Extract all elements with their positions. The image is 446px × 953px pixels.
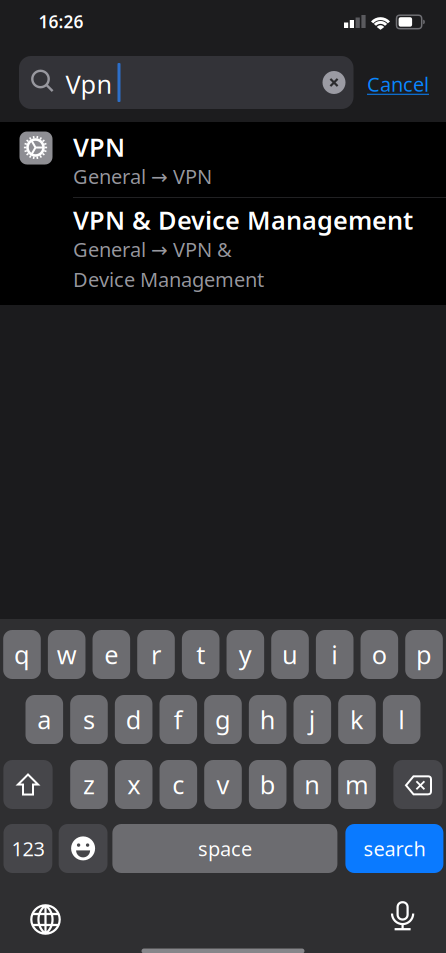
button[interactable]: p (405, 630, 443, 679)
button[interactable]: d (115, 695, 152, 744)
button[interactable]: y (227, 630, 264, 679)
button[interactable]: h (249, 695, 286, 744)
button[interactable]: f (159, 695, 197, 744)
button[interactable]: a (25, 695, 63, 744)
button[interactable]: i (316, 630, 353, 679)
button[interactable]: w (48, 630, 85, 679)
staticText: General → VPN (73, 163, 212, 190)
staticText: x (127, 768, 140, 801)
button[interactable]: s (70, 695, 108, 744)
staticText: b (260, 768, 276, 801)
button[interactable]: q (3, 630, 41, 679)
button[interactable]: o (361, 630, 398, 679)
button[interactable]: v (204, 760, 242, 809)
button[interactable]: b (249, 760, 286, 809)
staticText: k (350, 703, 364, 736)
button[interactable]: k (338, 695, 376, 744)
staticText: a (37, 703, 51, 736)
staticText: Device Management (73, 266, 264, 293)
staticText: m (345, 768, 369, 801)
staticText: 16:26 (38, 10, 83, 33)
staticText: p (416, 638, 432, 671)
button[interactable]: Search (19, 56, 353, 109)
button[interactable]: j (293, 695, 331, 744)
staticText: search (363, 835, 425, 862)
button[interactable]: Shift (3, 760, 53, 809)
button[interactable]: g (204, 695, 242, 744)
staticText: v (216, 768, 229, 801)
staticText: General → VPN & (73, 236, 232, 263)
button[interactable]: Emoji (59, 824, 107, 873)
staticText: i (331, 638, 338, 671)
button[interactable]: n (294, 760, 331, 809)
button[interactable]: Clear text (322, 71, 345, 94)
staticText: Cancel (367, 71, 429, 97)
staticText: h (260, 703, 276, 736)
staticText: VPN (73, 130, 125, 164)
staticText: 123 (11, 835, 44, 862)
button[interactable]: VPN (0, 122, 446, 197)
staticText: g (215, 703, 231, 736)
staticText: t (196, 638, 205, 671)
button[interactable]: e (92, 630, 130, 679)
button[interactable]: space (112, 824, 337, 873)
button[interactable]: x (115, 760, 152, 809)
button[interactable]: Next keyboard (28, 902, 62, 936)
staticText: VPN & Device Management (73, 203, 413, 237)
button[interactable]: Cancel (367, 71, 429, 97)
staticText: w (57, 638, 77, 671)
staticText: u (282, 638, 298, 671)
button[interactable]: 123 (3, 824, 52, 873)
staticText: l (398, 703, 405, 736)
button[interactable]: c (159, 760, 197, 809)
button[interactable]: u (271, 630, 309, 679)
staticText: s (83, 703, 95, 736)
staticText: y (239, 638, 252, 671)
staticText: o (372, 638, 387, 671)
staticText: j (309, 703, 316, 736)
button[interactable]: r (137, 630, 175, 679)
button[interactable]: Delete (393, 760, 443, 809)
staticText: c (172, 768, 184, 801)
button[interactable]: l (383, 695, 420, 744)
button[interactable]: t (182, 630, 219, 679)
staticText: space (198, 835, 252, 862)
staticText: z (83, 768, 95, 801)
button[interactable]: m (338, 760, 376, 809)
button[interactable]: VPN & Device Management (0, 198, 446, 305)
staticText: e (104, 638, 118, 671)
button[interactable]: search (345, 824, 443, 873)
staticText: f (174, 703, 183, 736)
staticText: r (151, 638, 161, 671)
staticText: Vpn (65, 67, 112, 101)
button[interactable]: Dictate (383, 898, 423, 938)
staticText: q (14, 638, 30, 671)
staticText: n (304, 768, 320, 801)
button[interactable]: z (70, 760, 108, 809)
staticText: d (126, 703, 142, 736)
